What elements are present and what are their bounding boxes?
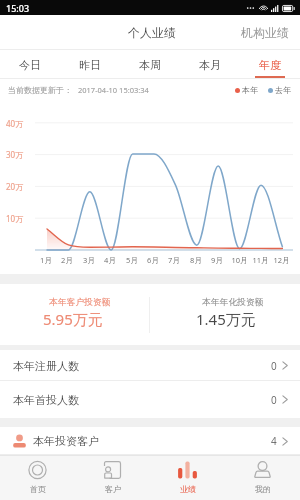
staticText: 40万 <box>6 118 24 129</box>
staticText: 0 <box>271 393 277 407</box>
staticText: 3月 <box>83 255 95 265</box>
button[interactable]: 本年年化投资额 <box>150 284 300 346</box>
staticText: 本周 <box>139 58 161 72</box>
button[interactable]: 本年注册人数 <box>0 350 300 381</box>
staticText: 机构业绩 <box>241 25 289 40</box>
button[interactable]: 本月 <box>180 50 240 79</box>
staticText: 10月 <box>231 255 248 265</box>
staticText: 1月 <box>40 255 52 265</box>
staticText: 0 <box>271 359 277 373</box>
button[interactable]: 本周 <box>120 50 180 79</box>
staticText: 5月 <box>126 255 138 265</box>
staticText: 当前数据更新于： <box>8 85 72 95</box>
staticText: 1.45万元 <box>196 309 256 329</box>
staticText: 2月 <box>61 255 73 265</box>
button[interactable]: 机构业绩 <box>233 15 296 50</box>
button[interactable]: 本年首投人数 <box>0 381 300 418</box>
staticText: 去年 <box>275 85 291 95</box>
staticText: 首页 <box>30 484 46 494</box>
staticText: 4月 <box>104 255 116 265</box>
staticText: 本年首投人数 <box>13 393 79 407</box>
staticText: 11月 <box>252 255 269 265</box>
staticText: 昨日 <box>79 58 101 72</box>
button[interactable]: 本年客户投资额 <box>0 284 149 346</box>
button[interactable]: 昨日 <box>60 50 120 79</box>
staticText: 本年 <box>242 85 258 95</box>
staticText: 10万 <box>6 213 24 224</box>
button[interactable]: Customers <box>75 455 150 500</box>
button[interactable]: Performance <box>150 455 225 500</box>
button[interactable]: 年度 <box>240 50 300 79</box>
staticText: 9月 <box>211 255 223 265</box>
staticText: 30万 <box>6 149 24 160</box>
staticText: 本年年化投资额 <box>202 297 264 308</box>
staticText: 6月 <box>147 255 159 265</box>
staticText: 8月 <box>190 255 202 265</box>
button[interactable]: 今日 <box>0 50 60 79</box>
staticText: 客户 <box>105 484 121 494</box>
staticText: 今日 <box>19 58 41 72</box>
button[interactable]: 本年投资客户 <box>0 427 300 455</box>
staticText: 我的 <box>255 484 271 494</box>
staticText: 7月 <box>168 255 180 265</box>
staticText: 20万 <box>6 181 24 192</box>
staticText: 本年客户投资额 <box>49 297 111 308</box>
staticText: 年度 <box>259 58 281 72</box>
button[interactable]: 个人业绩 <box>120 15 183 50</box>
staticText: 12月 <box>273 255 290 265</box>
staticText: 2017-04-10 15:03:34 <box>78 85 149 95</box>
button[interactable]: Home <box>0 455 75 500</box>
staticText: 业绩 <box>180 484 196 494</box>
staticText: 本年投资客户 <box>33 434 99 448</box>
button[interactable]: Profile <box>225 455 300 500</box>
staticText: 5.95万元 <box>43 309 103 329</box>
staticText: 个人业绩 <box>128 25 176 40</box>
staticText: 15:03 <box>6 2 30 14</box>
staticText: 4 <box>271 434 277 448</box>
staticText: 本月 <box>199 58 221 72</box>
staticText: 本年注册人数 <box>13 359 79 373</box>
